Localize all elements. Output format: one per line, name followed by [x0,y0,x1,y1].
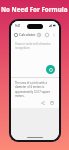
staticText: No Need For Formula [1,5,68,13]
staticText: The area of a circle with a diameter of … [15,81,55,89]
staticText: Draw or write with character recognition [15,42,59,50]
button[interactable]: Help [44,32,49,37]
staticText: approximately 12.57 square meters. [15,90,55,98]
button[interactable]: Share [40,100,46,106]
button[interactable]: History [36,32,41,37]
button[interactable]: Calculator [14,32,36,37]
staticText: 9:41 [15,24,21,28]
button[interactable]: Delete [49,100,55,106]
staticText: Calculator [19,32,36,37]
button[interactable]: More options [52,32,56,37]
button[interactable]: Calculate [46,65,55,74]
